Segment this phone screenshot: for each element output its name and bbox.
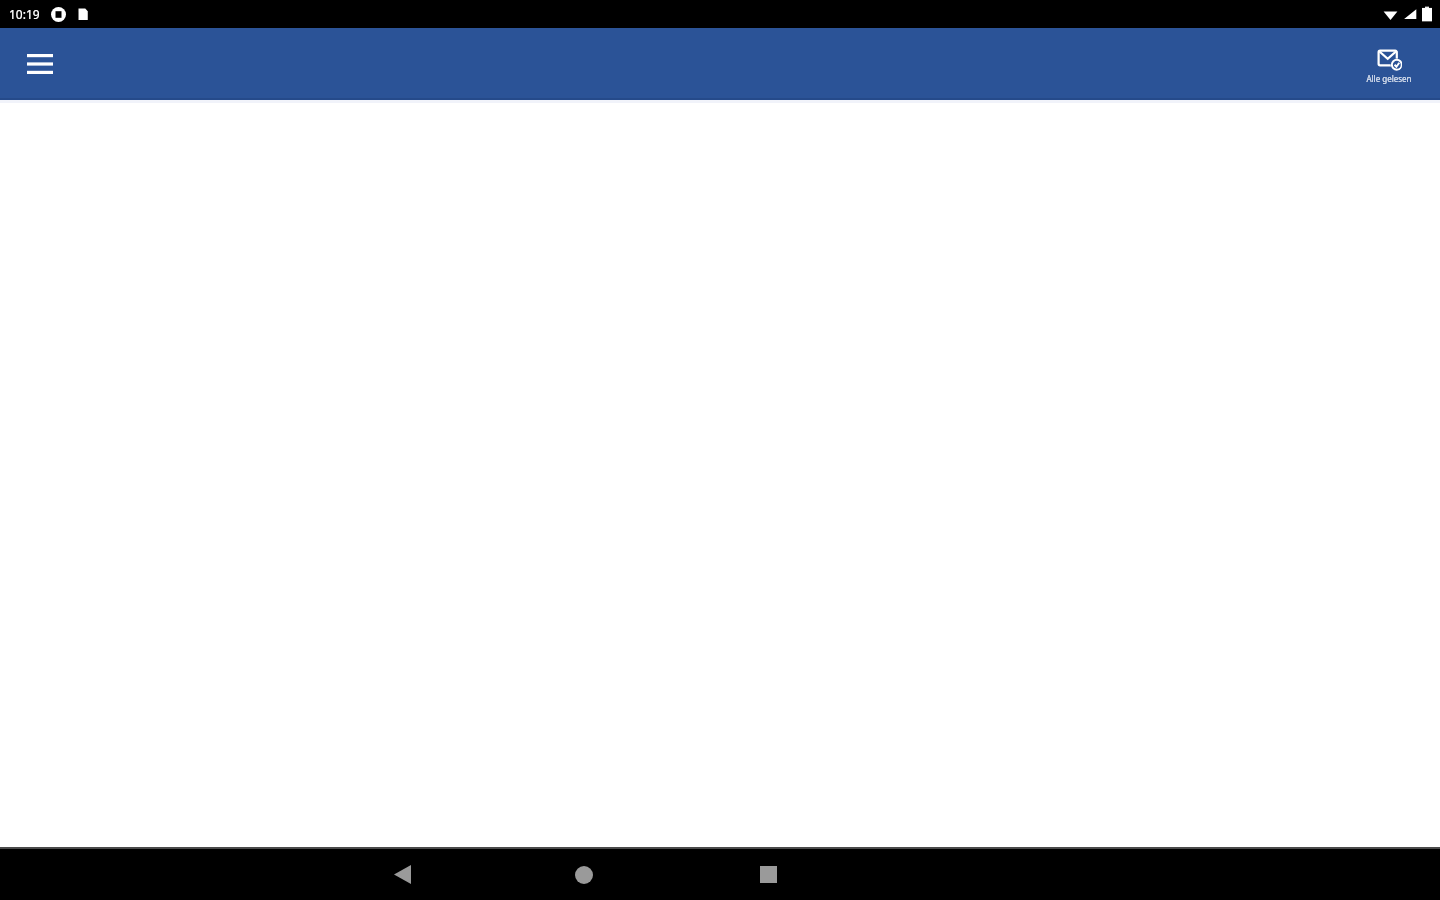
staticText: 10:19 [9, 6, 40, 22]
staticText: Alle gelesen [1352, 73, 1426, 84]
button[interactable]: Menü öffnen [14, 38, 66, 90]
button[interactable]: Startbildschirm [539, 849, 629, 900]
button[interactable]: Zurück [357, 849, 447, 900]
button[interactable]: Alle gelesen [1352, 41, 1426, 88]
button[interactable]: Letzte Apps [723, 849, 813, 900]
